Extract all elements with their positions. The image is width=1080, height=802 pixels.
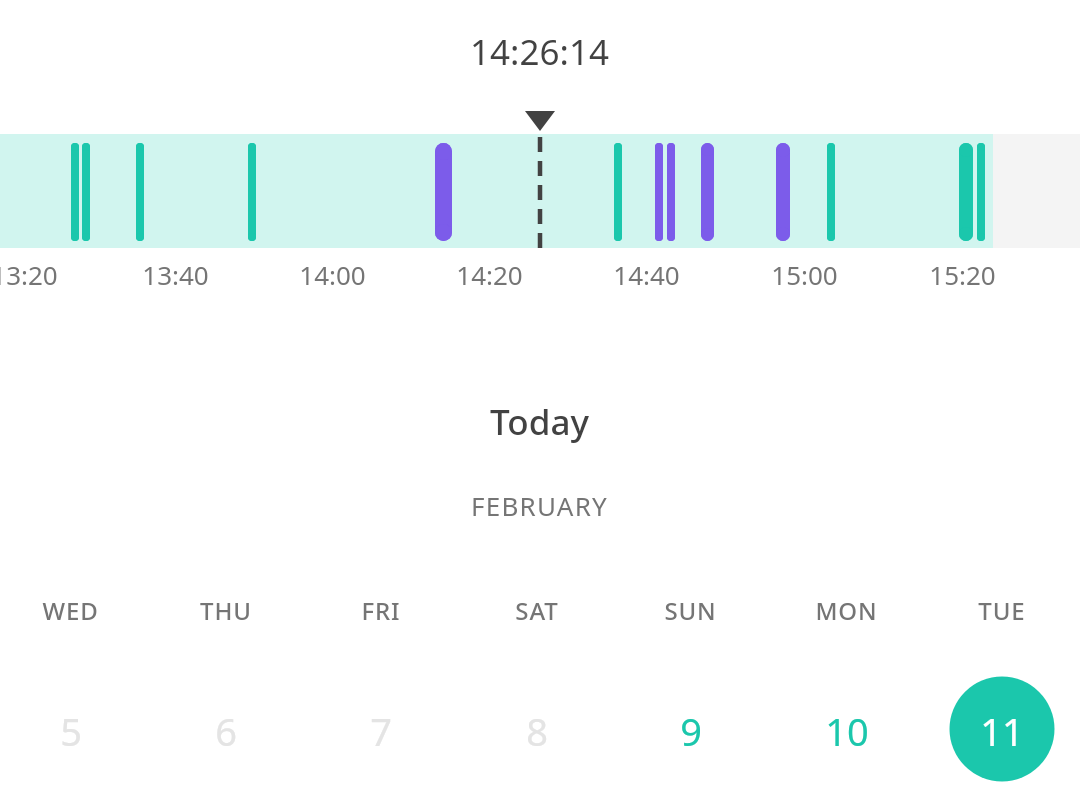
staticText: 14:00 [299,257,366,292]
button[interactable]: Today [490,398,589,446]
staticText: 5 [60,705,82,757]
button[interactable]: Day 7 [370,705,392,757]
staticText: 15:20 [929,257,996,292]
button[interactable]: Day 5 [60,705,82,757]
staticText: 7 [370,705,392,757]
staticText: FEBRUARY [471,488,608,523]
staticText: 13:20 [0,257,58,292]
staticText: Today [490,398,589,446]
button[interactable]: Day 9 [680,705,702,757]
staticText: FRI [361,594,401,627]
staticText: SUN [664,594,717,627]
staticText: WED [42,594,99,627]
staticText: 6 [215,705,237,757]
staticText: 8 [526,705,548,757]
staticText: MON [815,594,878,627]
button[interactable]: Day 8 [526,705,548,757]
staticText: 14:26:14 [470,28,609,76]
button[interactable]: Day 11 [980,705,1024,757]
staticText: 14:20 [456,257,523,292]
staticText: 10 [825,705,869,757]
staticText: TUE [978,594,1026,627]
staticText: 15:00 [771,257,838,292]
staticText: 11 [980,705,1024,757]
staticText: 9 [680,705,702,757]
button[interactable]: Day 10 [825,705,869,757]
staticText: SAT [515,594,559,627]
staticText: THU [200,594,252,627]
staticText: 13:40 [142,257,209,292]
staticText: 14:40 [613,257,680,292]
button[interactable]: Day 6 [215,705,237,757]
